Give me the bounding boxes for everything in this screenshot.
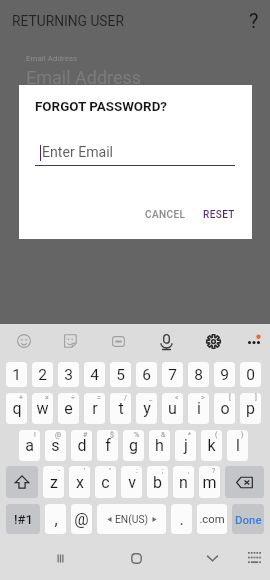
staticText: ÷ [71,394,75,402]
button[interactable]: CANCEL [137,203,194,227]
button[interactable]: 3 [58,362,79,387]
staticText: ' [84,467,86,475]
staticText: a [25,436,34,455]
staticText: + [19,394,23,402]
button[interactable]: Emoji [7,324,41,358]
staticText: m [202,473,217,492]
button[interactable]: 7 [162,362,183,387]
staticText: x [76,473,84,492]
button[interactable]: j [175,430,196,461]
staticText: v [128,473,136,492]
staticText: i [197,399,201,418]
staticText: 6 [142,366,151,384]
button[interactable]: v [121,466,142,498]
button[interactable]: 8 [188,362,209,387]
button[interactable]: m [199,466,220,498]
button[interactable]: o [214,393,235,424]
button[interactable]: Back [191,537,233,580]
button[interactable]: Voice input [149,324,183,358]
staticText: _ [149,394,153,402]
button[interactable]: h [149,430,170,461]
staticText: u [168,399,177,418]
staticText: > [201,394,205,402]
button[interactable]: k [201,430,222,461]
button[interactable]: z [43,466,64,498]
button[interactable]: Home [115,537,157,580]
button[interactable]: 5 [110,362,131,387]
staticText: / [124,394,127,402]
button[interactable]: Settings [196,324,230,358]
staticText: * [188,431,192,439]
button[interactable]: Hide keyboard [234,537,270,580]
button[interactable]: Done [232,504,264,534]
staticText: b [153,473,162,492]
button[interactable]: a [19,430,40,461]
staticText: " [109,467,112,475]
button[interactable]: f [97,430,118,461]
button[interactable]: Change language [97,504,166,534]
button[interactable]: RESET [195,203,243,227]
staticText: 3 [64,366,73,384]
button[interactable]: r [84,393,105,424]
staticText: - [58,467,60,475]
staticText: 4 [90,366,99,384]
button[interactable]: Backspace [225,466,264,498]
button[interactable]: 4 [84,362,105,387]
button[interactable]: . [171,504,192,534]
staticText: : [136,467,138,475]
staticText: & [161,431,166,439]
button[interactable]: 9 [214,362,235,387]
button[interactable]: d [71,430,92,461]
staticText: t [118,399,124,418]
staticText: = [97,394,101,402]
button[interactable]: , [45,504,66,534]
button[interactable]: e [58,393,79,424]
staticText: ( [215,431,218,439]
staticText: s [51,436,60,455]
button[interactable]: g [123,430,144,461]
button[interactable]: y [136,393,157,424]
button[interactable]: 1 [6,362,27,387]
staticText: d [77,436,87,455]
button[interactable]: i [188,393,209,424]
button[interactable]: Help [242,8,266,32]
staticText: RESET [203,209,235,221]
button[interactable]: Shift [6,466,38,498]
staticText: FORGOT PASSWORD? [35,99,168,115]
staticText: @ [74,510,89,529]
staticText: !#1 [14,512,33,527]
button[interactable]: @ [71,504,92,534]
button[interactable]: t [110,393,131,424]
staticText: w [36,399,49,418]
button[interactable]: s [45,430,66,461]
button[interactable]: u [162,393,183,424]
button[interactable]: !#1 [6,504,40,534]
staticText: @ [55,431,62,439]
button[interactable]: 6 [136,362,157,387]
button[interactable]: Recents [39,537,81,580]
button[interactable]: p [240,393,261,424]
staticText: 7 [168,366,177,384]
staticText: ; [162,467,164,475]
staticText: .com [199,513,225,526]
button[interactable]: x [69,466,90,498]
button[interactable]: n [173,466,194,498]
staticText: 8 [194,366,203,384]
staticText: # [83,431,88,439]
button[interactable]: GIF [101,324,135,358]
button[interactable]: w [32,393,53,424]
button[interactable]: c [95,466,116,498]
button[interactable]: 0 [240,362,261,387]
staticText: g [129,436,138,455]
button[interactable]: 2 [32,362,53,387]
button[interactable]: b [147,466,168,498]
button[interactable]: q [6,393,27,424]
button[interactable]: l [227,430,248,461]
staticText: × [45,394,49,402]
staticText: k [207,436,216,455]
button[interactable]: Stickers [53,324,87,358]
staticText: 1 [12,366,21,384]
button[interactable]: .com [197,504,227,534]
staticText: q [12,399,22,418]
button[interactable]: More options [237,324,270,358]
